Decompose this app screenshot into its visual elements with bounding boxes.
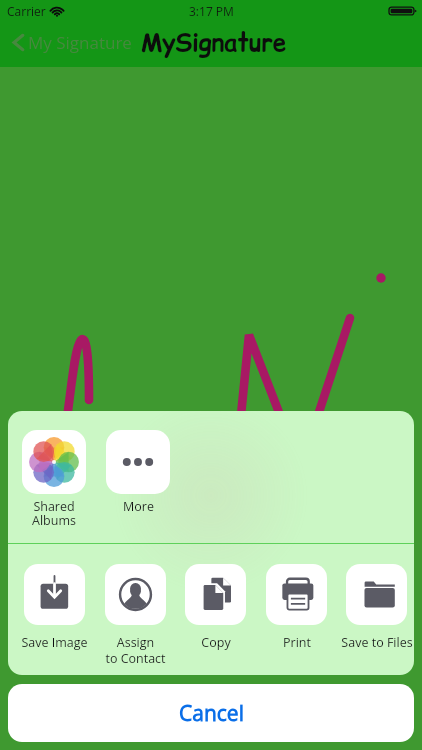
button[interactable]: Save to Files	[333, 564, 414, 651]
staticText: Cancel	[179, 699, 244, 728]
staticText: Print	[283, 634, 311, 651]
button[interactable]: Print	[253, 564, 340, 651]
button[interactable]: More	[97, 430, 179, 515]
staticText: Carrier	[7, 3, 46, 19]
staticText: Save Image	[21, 634, 88, 651]
staticText: Save to Files	[341, 634, 413, 651]
staticText: Shared Albums	[32, 498, 76, 529]
button[interactable]: Copy	[172, 564, 259, 651]
staticText: Assign to Contact	[105, 634, 166, 666]
staticText: More	[123, 498, 154, 515]
staticText: Copy	[201, 634, 231, 651]
button[interactable]: Shared Albums	[13, 430, 95, 529]
button[interactable]: My Signature	[12, 31, 132, 54]
staticText: MySignature	[141, 26, 287, 59]
button[interactable]: Assign to Contact	[92, 564, 179, 666]
button[interactable]: Save Image	[11, 564, 98, 651]
staticText: My Signature	[28, 31, 132, 54]
staticText: 3:17 PM	[189, 3, 234, 19]
button[interactable]: Cancel	[8, 684, 414, 742]
